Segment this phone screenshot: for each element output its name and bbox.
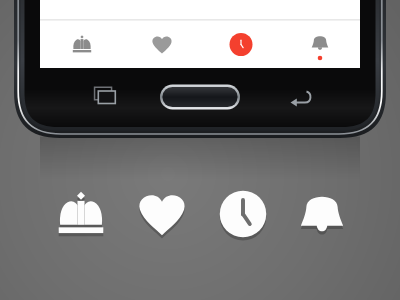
button[interactable]: Crown — [40, 26, 120, 66]
button[interactable]: Clock icon — [215, 186, 271, 242]
button[interactable]: Bell icon — [294, 186, 350, 242]
button[interactable]: Notifications — [280, 26, 360, 66]
button[interactable]: Crown icon — [53, 186, 109, 242]
button[interactable]: Recent — [200, 26, 280, 66]
button[interactable]: Back — [283, 84, 315, 112]
button[interactable]: Heart icon — [134, 186, 190, 242]
button[interactable]: Favorites — [120, 26, 200, 66]
button[interactable]: Recents — [96, 84, 126, 112]
button[interactable]: Home — [158, 82, 242, 112]
